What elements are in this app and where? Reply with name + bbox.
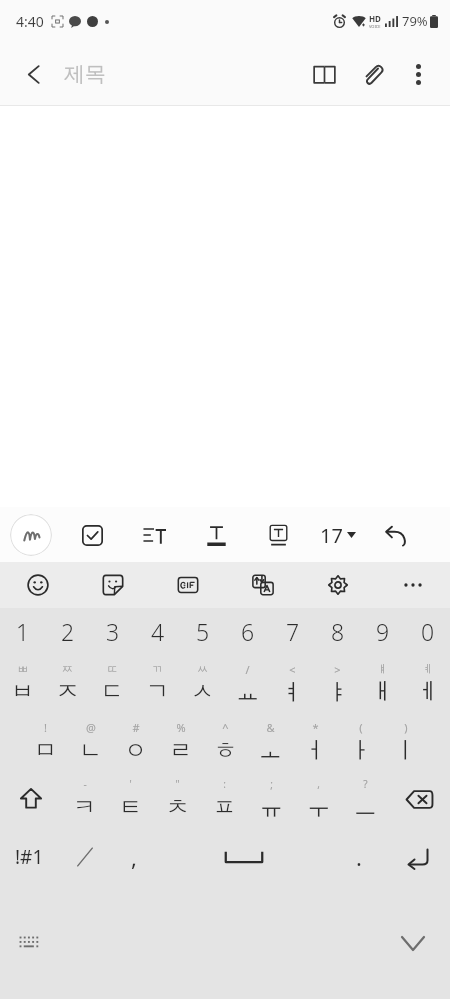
- button[interactable]: 제목: [64, 61, 300, 87]
- staticText: ?: [363, 777, 368, 791]
- staticText: ㅁ: [34, 736, 57, 765]
- button[interactable]: Text style: [196, 515, 236, 555]
- button[interactable]: More: [375, 562, 450, 608]
- button[interactable]: 5: [180, 608, 225, 654]
- button[interactable]: >: [315, 654, 360, 714]
- button[interactable]: ㄸ: [90, 654, 135, 714]
- button[interactable]: 4: [135, 608, 180, 654]
- button[interactable]: Back: [10, 50, 58, 98]
- button[interactable]: Translate: [225, 562, 300, 608]
- button[interactable]: 0: [405, 608, 450, 654]
- button[interactable]: GIF: [150, 562, 225, 608]
- button[interactable]: ㅉ: [45, 654, 90, 714]
- button[interactable]: Keyboard settings: [300, 562, 375, 608]
- staticText: &: [266, 720, 275, 735]
- button[interactable]: 8: [315, 608, 360, 654]
- button[interactable]: 9: [360, 608, 405, 654]
- button[interactable]: 2: [45, 608, 90, 654]
- staticText: VOICE: [369, 24, 381, 29]
- button[interactable]: Text box: [258, 515, 298, 555]
- button[interactable]: !#1: [0, 828, 58, 886]
- staticText: 4: [151, 616, 165, 647]
- button[interactable]: Checklist: [72, 515, 112, 555]
- staticText: 2: [61, 616, 75, 647]
- button[interactable]: Korean English toggle: [58, 828, 112, 886]
- button[interactable]: <: [270, 654, 315, 714]
- button[interactable]: %: [158, 714, 203, 770]
- staticText: ': [129, 777, 132, 791]
- staticText: 1: [16, 616, 30, 647]
- button[interactable]: #: [113, 714, 158, 770]
- button[interactable]: ?: [342, 770, 389, 828]
- staticText: ㄸ: [107, 662, 118, 676]
- button[interactable]: -: [61, 770, 107, 828]
- button[interactable]: ": [154, 770, 201, 828]
- staticText: ^: [222, 720, 229, 735]
- button[interactable]: Undo: [376, 515, 416, 555]
- staticText: ,: [131, 842, 137, 872]
- button[interactable]: @: [68, 714, 113, 770]
- button[interactable]: 6: [225, 608, 270, 654]
- staticText: ㅃ: [17, 662, 28, 676]
- button[interactable]: Attach: [348, 50, 396, 98]
- button[interactable]: ㅆ: [180, 654, 225, 714]
- staticText: HD: [369, 13, 381, 24]
- staticText: @: [86, 720, 96, 735]
- staticText: ㅎ: [214, 736, 237, 765]
- button[interactable]: Paragraph style: [134, 515, 174, 555]
- button[interactable]: Handwriting: [10, 514, 52, 556]
- staticText: ㅊ: [166, 793, 189, 822]
- button[interactable]: ㅒ: [360, 654, 405, 714]
- button[interactable]: Shift: [0, 770, 61, 828]
- button[interactable]: &: [248, 714, 293, 770]
- staticText: -: [83, 777, 87, 791]
- button[interactable]: More options: [396, 52, 440, 96]
- button[interactable]: ): [383, 714, 428, 770]
- button[interactable]: ㅃ: [0, 654, 45, 714]
- staticText: ㅈ: [56, 677, 79, 706]
- button[interactable]: ,: [295, 770, 342, 828]
- staticText: :: [223, 777, 226, 791]
- staticText: ㅡ: [354, 793, 377, 822]
- staticText: 9: [376, 616, 390, 647]
- staticText: 79%: [402, 12, 428, 30]
- button[interactable]: !: [22, 714, 68, 770]
- button[interactable]: Emoji: [0, 562, 75, 608]
- button[interactable]: 7: [270, 608, 315, 654]
- button[interactable]: (: [338, 714, 383, 770]
- button[interactable]: ^: [203, 714, 248, 770]
- button[interactable]: ;: [248, 770, 295, 828]
- staticText: ㅋ: [73, 793, 96, 822]
- staticText: 0: [421, 616, 435, 647]
- button[interactable]: Space: [156, 828, 332, 886]
- staticText: ㅠ: [260, 793, 283, 822]
- button[interactable]: ,: [112, 828, 156, 886]
- button[interactable]: /: [225, 654, 270, 714]
- button[interactable]: 17: [316, 513, 360, 557]
- button[interactable]: .: [332, 828, 386, 886]
- button[interactable]: Backspace: [389, 770, 450, 828]
- staticText: ㅏ: [349, 736, 372, 765]
- staticText: ㄹ: [169, 736, 192, 765]
- button[interactable]: 1: [0, 608, 45, 654]
- staticText: ㅓ: [304, 736, 327, 765]
- button[interactable]: ': [107, 770, 154, 828]
- button[interactable]: Stickers: [75, 562, 150, 608]
- button[interactable]: ㄲ: [135, 654, 180, 714]
- button[interactable]: :: [201, 770, 248, 828]
- button[interactable]: *: [293, 714, 338, 770]
- staticText: ㅕ: [281, 678, 304, 707]
- button[interactable]: Reading mode: [300, 50, 348, 98]
- button[interactable]: Enter: [386, 828, 450, 886]
- staticText: ;: [270, 777, 273, 791]
- staticText: ㅛ: [236, 678, 259, 707]
- button[interactable]: Keyboard layout: [12, 926, 46, 960]
- staticText: ㅂ: [11, 677, 34, 706]
- button[interactable]: ㅖ: [405, 654, 450, 714]
- staticText: ㄲ: [152, 662, 163, 676]
- button[interactable]: Hide keyboard: [394, 924, 432, 962]
- staticText: 3: [106, 616, 120, 647]
- button[interactable]: 3: [90, 608, 135, 654]
- staticText: ㅑ: [326, 678, 349, 707]
